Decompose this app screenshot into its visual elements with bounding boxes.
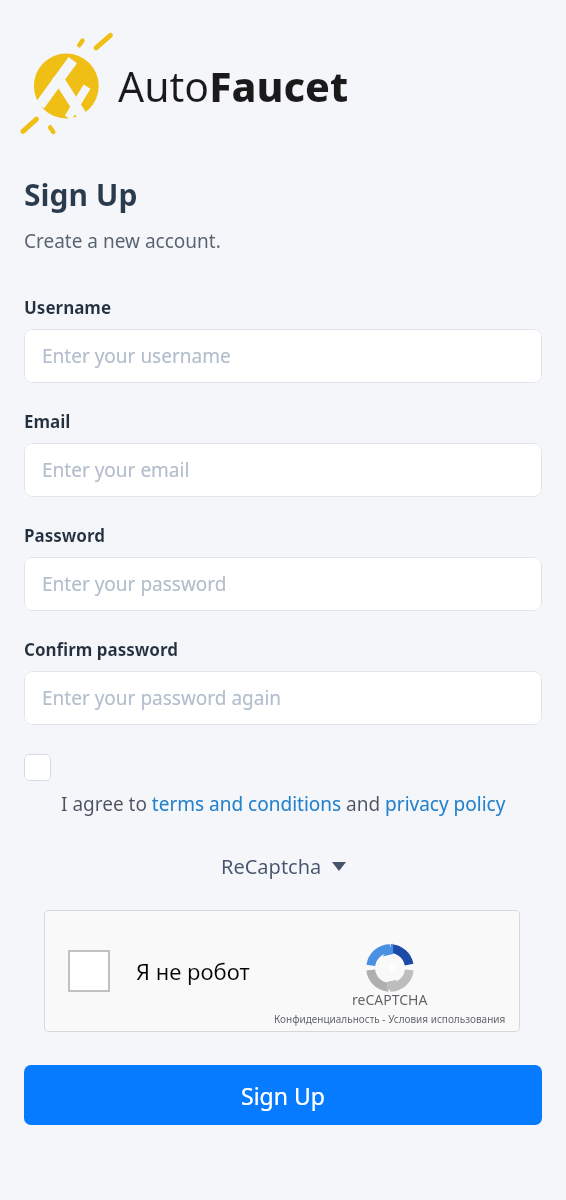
button[interactable]: ReCaptcha (24, 853, 542, 880)
button[interactable]: I am not a robot (44, 910, 520, 1032)
staticText: Username (24, 296, 112, 319)
button[interactable]: Enter your password (24, 557, 542, 611)
button[interactable]: Enter your password again (24, 671, 542, 725)
staticText: Password (24, 524, 105, 547)
staticText: Конфиденциальность - Условия использован… (274, 1012, 506, 1026)
staticText: reCAPTCHA (352, 990, 428, 1009)
staticText: Email (24, 410, 71, 433)
staticText: Enter your email (42, 457, 190, 483)
staticText: Я не робот (136, 956, 250, 986)
button[interactable]: I am not a robot (68, 950, 110, 992)
button[interactable]: Enter your username (24, 329, 542, 383)
staticText: AutoFaucet (118, 58, 349, 114)
staticText: Enter your password (42, 571, 227, 597)
staticText: Create a new account. (24, 228, 221, 254)
button[interactable]: I agree to terms and conditions and priv… (24, 791, 542, 817)
staticText: Sign Up (24, 174, 138, 215)
button[interactable]: Agree to terms checkbox (24, 754, 51, 781)
staticText: Sign Up (241, 1080, 325, 1111)
button[interactable]: Sign Up (24, 1065, 542, 1125)
staticText: Enter your username (42, 343, 231, 369)
staticText: Confirm password (24, 638, 179, 661)
staticText: Enter your password again (42, 685, 282, 711)
button[interactable]: Enter your email (24, 443, 542, 497)
staticText: I agree to terms and conditions and priv… (61, 791, 506, 817)
staticText: ReCaptcha (221, 853, 322, 880)
button[interactable]: AutoFaucet logo (24, 38, 349, 134)
